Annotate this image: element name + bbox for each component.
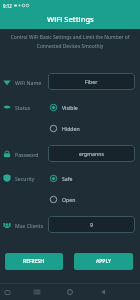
staticText: 9:12 (3, 3, 12, 9)
staticText: 9 (90, 221, 93, 228)
staticText: WiFi Name (15, 79, 42, 86)
staticText: APPLY (96, 258, 111, 265)
button[interactable]: ergmanns (48, 145, 135, 162)
button[interactable]: Safe (49, 173, 73, 183)
staticText: Hidden (62, 125, 80, 132)
button[interactable]: Visible (49, 102, 78, 112)
staticText: WiFi Settings (47, 14, 94, 24)
staticText: Open (62, 196, 76, 203)
button[interactable]: APPLY (74, 253, 133, 270)
staticText: Max Clients (15, 222, 44, 229)
button[interactable]: 9 (48, 216, 135, 233)
staticText: Visible (62, 104, 78, 111)
staticText: Status (15, 104, 31, 111)
staticText: Safe (62, 175, 73, 182)
button[interactable]: REFRESH (5, 253, 63, 270)
button[interactable]: Back (97, 286, 109, 298)
button[interactable]: Hidden (49, 123, 80, 133)
staticText: Control WiFi Basic Settings and Limit th… (0, 34, 140, 50)
button[interactable]: Open (49, 194, 76, 204)
staticText: REFRESH (23, 258, 45, 265)
button[interactable]: Fiber (48, 73, 135, 90)
staticText: ergmanns (79, 150, 104, 157)
button[interactable]: Recent apps (31, 286, 43, 298)
staticText: Security (15, 175, 35, 182)
button[interactable]: Keyboard (1, 286, 13, 298)
button[interactable]: Home (64, 286, 76, 298)
staticText: Fiber (85, 78, 98, 85)
staticText: Password (15, 151, 39, 158)
